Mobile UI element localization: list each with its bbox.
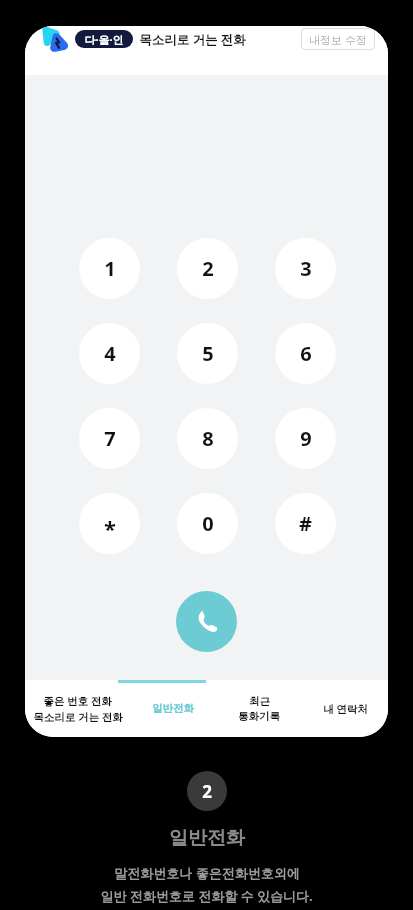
staticText: 좋은 번호 전화 — [43, 694, 112, 708]
staticText: 9 — [300, 425, 312, 452]
button[interactable]: 4 — [79, 323, 140, 384]
button[interactable]: 2 — [177, 238, 238, 299]
staticText: 목소리로 거는 전화 — [33, 710, 123, 724]
staticText: 내 연락처 — [323, 702, 368, 716]
staticText: 목소리로 거는 전화 — [139, 31, 246, 48]
button[interactable]: Call — [176, 591, 237, 652]
staticText: 8 — [202, 425, 214, 452]
staticText: 다·올·인 — [84, 32, 124, 47]
button[interactable]: 일반전화 — [130, 680, 216, 737]
staticText: 일반 전화번호로 전화할 수 있습니다. — [100, 887, 313, 905]
button[interactable]: 최근 — [216, 680, 302, 737]
staticText: * — [104, 513, 116, 543]
button[interactable]: 좋은 번호 전화 — [25, 680, 130, 737]
staticText: 2 — [202, 780, 212, 803]
button[interactable]: 1 — [79, 238, 140, 299]
button[interactable]: 내정보 수정 — [301, 28, 375, 50]
staticText: 말전화번호나 좋은전화번호외에 — [114, 864, 300, 882]
staticText: # — [299, 510, 312, 537]
staticText: 7 — [104, 425, 116, 452]
staticText: 5 — [202, 340, 214, 367]
staticText: 0 — [202, 510, 214, 537]
staticText: 6 — [300, 340, 312, 367]
button[interactable]: 8 — [177, 408, 238, 469]
staticText: 1 — [104, 255, 116, 282]
button[interactable]: 3 — [275, 238, 336, 299]
staticText: 3 — [300, 255, 312, 282]
button[interactable]: 5 — [177, 323, 238, 384]
button[interactable]: # — [275, 493, 336, 554]
button[interactable]: 내 연락처 — [302, 680, 388, 737]
button[interactable]: 0 — [177, 493, 238, 554]
button[interactable]: 7 — [79, 408, 140, 469]
staticText: 4 — [104, 340, 116, 367]
staticText: 통화기록 — [238, 710, 280, 723]
staticText: 2 — [202, 255, 214, 282]
button[interactable]: 6 — [275, 323, 336, 384]
staticText: 일반전화 — [169, 826, 245, 850]
staticText: 최근 — [249, 695, 270, 708]
button[interactable]: * — [79, 493, 140, 554]
button[interactable]: 9 — [275, 408, 336, 469]
staticText: 일반전화 — [152, 702, 194, 715]
staticText: 내정보 수정 — [309, 32, 367, 47]
